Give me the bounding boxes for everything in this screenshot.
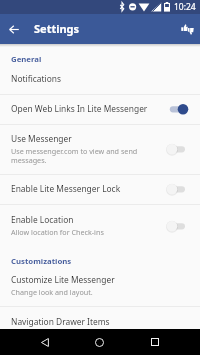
staticText: Use Messenger: [11, 133, 72, 144]
button[interactable]: Back: [31, 329, 59, 355]
button[interactable]: Navigation Drawer Items: [0, 307, 200, 338]
staticText: Navigation Drawer Items: [11, 316, 110, 327]
staticText: General: [11, 54, 42, 65]
staticText: Open Web Links In Lite Messenger: [11, 103, 148, 114]
button[interactable]: Notifications: [0, 64, 200, 95]
button[interactable]: Customize Lite Messenger: [0, 266, 200, 307]
staticText: Customizations: [11, 256, 72, 267]
button[interactable]: Recent apps: [141, 329, 169, 355]
button[interactable]: Use Messenger: [0, 125, 200, 175]
button[interactable]: Open Web Links In Lite Messenger: [0, 94, 200, 125]
staticText: Use messenger.com to view and send messa…: [11, 146, 161, 165]
staticText: Enable Location: [11, 214, 74, 225]
staticText: Change look and layout.: [11, 287, 93, 297]
button[interactable]: Home: [85, 329, 113, 355]
staticText: Allow location for Check-ins: [11, 227, 104, 237]
staticText: Customize Lite Messenger: [11, 274, 115, 285]
staticText: Enable Lite Messenger Lock: [11, 183, 121, 194]
staticText: Notifications: [11, 73, 61, 84]
staticText: Settings: [34, 21, 80, 36]
button[interactable]: Navigate up: [0, 14, 28, 44]
button[interactable]: Enable Location: [0, 205, 200, 248]
staticText: 10:24: [174, 1, 196, 13]
button[interactable]: Rate this app: [174, 14, 200, 44]
button[interactable]: Enable Lite Messenger Lock: [0, 174, 200, 205]
